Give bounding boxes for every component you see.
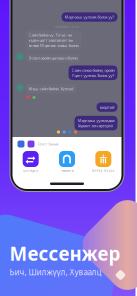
button[interactable]: Нэхэмжлэх — [49, 151, 85, 172]
button[interactable]: Attach — [17, 140, 24, 147]
staticText: Эсвэл оройн цагаар ч болно — [28, 55, 77, 60]
staticText: Баяртай! — [99, 104, 114, 110]
staticText: Маргааш уулзахдаа баримт авч ирээрэй — [77, 118, 114, 128]
staticText: Шилжүүлэг — [23, 169, 38, 172]
button[interactable]: Camera — [27, 140, 34, 147]
staticText: Текст бичих — [37, 141, 58, 147]
staticText: Бич, Шилжүүл, Хуваалц — [9, 267, 101, 277]
staticText: Мессенжер — [9, 241, 120, 266]
staticText: Өнөөдөр 10:24 — [55, 25, 79, 28]
staticText: Маш сайн байна. Уулзъя! — [28, 86, 73, 91]
staticText: ♥ — [26, 94, 31, 100]
button[interactable]: Шилжүүлэг — [12, 151, 49, 172]
staticText: Нэхэмжлэх — [60, 169, 73, 172]
button[interactable]: Төлбөр тооцоо — [85, 151, 121, 172]
staticText: Маргааш уулзаж болох уу? — [64, 14, 114, 20]
staticText: Сайн байна уу. Тэгье, чи хэдэн цагт завт… — [28, 32, 78, 48]
staticText: Төлбөр тооцоо — [92, 169, 115, 172]
staticText: Сайн санаа байна, оройн 7 цагт уулзъя. Б… — [71, 67, 114, 78]
